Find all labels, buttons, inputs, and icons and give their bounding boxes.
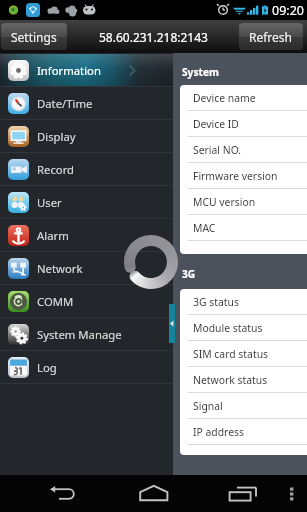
button[interactable]: 3G status xyxy=(180,289,307,315)
button[interactable]: Log xyxy=(0,351,173,384)
staticText: System xyxy=(182,65,219,79)
button[interactable]: Recent apps xyxy=(210,475,278,512)
staticText: Information xyxy=(37,63,101,78)
staticText: Device name xyxy=(193,91,256,105)
staticText: Alarm xyxy=(37,228,69,243)
button[interactable]: Network status xyxy=(180,367,307,393)
staticText: Network xyxy=(37,261,83,276)
button[interactable]: Refresh xyxy=(239,23,303,50)
button[interactable]: MAC xyxy=(180,215,307,241)
button[interactable]: Device ID xyxy=(180,111,307,137)
staticText: 3G xyxy=(182,267,196,281)
staticText: Display xyxy=(37,129,76,144)
staticText: Settings xyxy=(11,29,57,45)
button[interactable]: Serial NO. xyxy=(180,137,307,163)
staticText: 09:20 xyxy=(272,2,304,19)
staticText: Record xyxy=(37,162,75,177)
staticText: Device ID xyxy=(193,117,239,131)
button[interactable]: Collapse panel xyxy=(169,304,175,343)
staticText: COMM xyxy=(37,294,74,309)
staticText: User xyxy=(37,195,62,210)
button[interactable]: IP address xyxy=(180,419,307,445)
staticText: MAC xyxy=(193,221,216,235)
button[interactable]: System Manage xyxy=(0,318,173,351)
button[interactable]: Back xyxy=(28,475,98,512)
button[interactable]: MCU version xyxy=(180,189,307,215)
button[interactable]: Display xyxy=(0,120,173,153)
staticText: MCU version xyxy=(193,195,256,209)
button[interactable]: Settings xyxy=(1,23,67,50)
staticText: 3G status xyxy=(193,295,239,309)
button[interactable]: COMM xyxy=(0,285,173,318)
button[interactable]: Signal xyxy=(180,393,307,419)
button[interactable]: Home xyxy=(120,475,188,512)
button[interactable]: SIM card status xyxy=(180,341,307,367)
staticText: Firmware version xyxy=(193,169,278,183)
staticText: Signal xyxy=(193,399,223,413)
staticText: Module status xyxy=(193,321,263,335)
button[interactable]: More options xyxy=(278,475,307,512)
staticText: 58.60.231.218:2143 xyxy=(99,29,208,45)
button[interactable]: Network xyxy=(0,252,173,285)
button[interactable]: Information xyxy=(0,54,173,87)
button[interactable]: Firmware version xyxy=(180,163,307,189)
staticText: Network status xyxy=(193,373,268,387)
staticText: SIM card status xyxy=(193,347,269,361)
staticText: Serial NO. xyxy=(193,143,242,157)
button[interactable]: Module status xyxy=(180,315,307,341)
button[interactable]: User xyxy=(0,186,173,219)
button[interactable]: Record xyxy=(0,153,173,186)
button[interactable]: Device name xyxy=(180,85,307,111)
staticText: Log xyxy=(37,360,57,375)
staticText: Date/Time xyxy=(37,96,93,111)
button[interactable]: Date/Time xyxy=(0,87,173,120)
staticText: System Manage xyxy=(37,327,122,342)
staticText: Refresh xyxy=(249,29,293,45)
button[interactable]: Alarm xyxy=(0,219,173,252)
staticText: IP address xyxy=(193,425,245,439)
